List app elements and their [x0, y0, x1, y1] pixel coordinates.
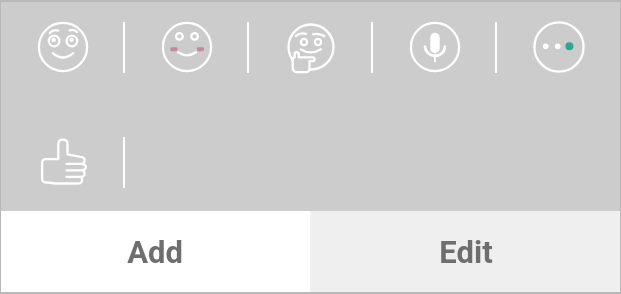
button[interactable]: Add [0, 211, 310, 292]
staticText: Add [127, 234, 183, 270]
button[interactable]: Blushing face [125, 2, 249, 117]
other: Blushing face [161, 21, 213, 73]
other: Thumbs up [37, 136, 89, 188]
button[interactable]: Voice message [373, 2, 497, 117]
button[interactable]: Thumbs up [0, 117, 125, 211]
other: More reactions [533, 21, 585, 73]
button[interactable]: Thinking face [249, 2, 373, 117]
button[interactable]: More reactions [497, 2, 621, 117]
button[interactable]: Excited face [0, 2, 125, 117]
other: Thinking face [285, 21, 337, 73]
staticText: Edit [439, 234, 493, 270]
other: Voice message [409, 21, 461, 73]
other: Excited face [37, 21, 89, 73]
button[interactable]: Edit [310, 211, 621, 292]
